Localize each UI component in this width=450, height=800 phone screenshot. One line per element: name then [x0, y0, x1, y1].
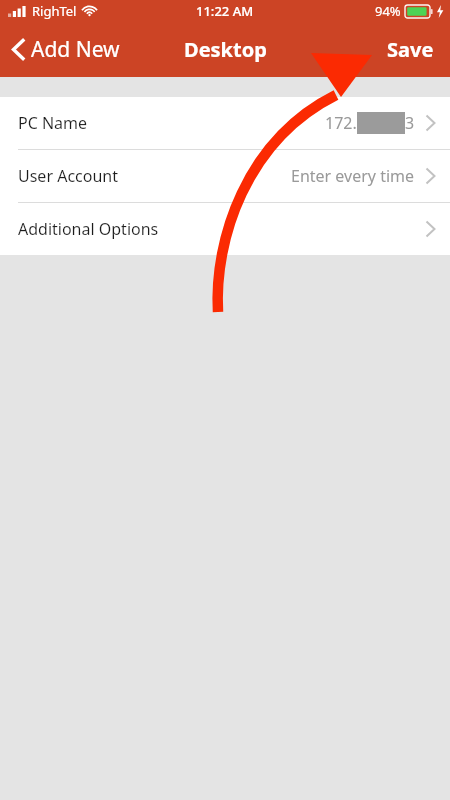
staticText: Enter every time: [291, 165, 415, 187]
staticText: PC Name: [18, 112, 88, 134]
other: Back: [12, 39, 24, 60]
button[interactable]: Back: [0, 27, 132, 72]
staticText: 94%: [375, 2, 401, 20]
button[interactable]: Save: [371, 28, 450, 71]
staticText: Save: [387, 36, 434, 63]
staticText: 11:22 AM: [196, 2, 254, 20]
staticText: User Account: [18, 165, 118, 187]
button[interactable]: PC Name: [0, 97, 450, 149]
staticText: 3: [405, 112, 415, 134]
staticText: Additional Options: [18, 218, 159, 240]
button[interactable]: User Account: [0, 150, 450, 202]
staticText: Add New: [31, 35, 120, 64]
staticText: 172.: [325, 112, 357, 134]
button[interactable]: Additional Options: [0, 203, 450, 255]
staticText: RighTel: [32, 2, 77, 20]
staticText: Desktop: [184, 36, 267, 63]
